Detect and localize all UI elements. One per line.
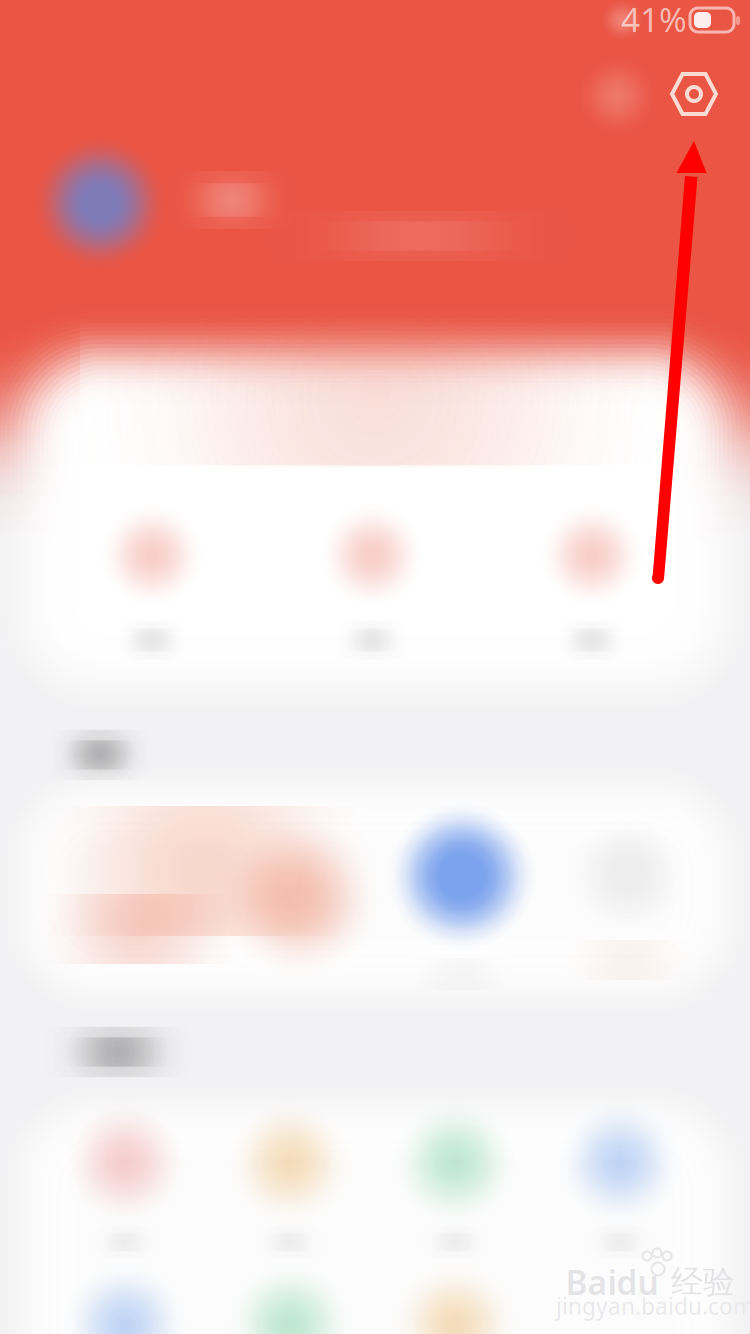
button[interactable] bbox=[25, 793, 385, 993]
staticText: jingyan.baidu.com bbox=[556, 1291, 750, 1321]
button[interactable] bbox=[372, 783, 552, 993]
button[interactable]: Green bbox=[208, 1271, 372, 1334]
button[interactable]: Orange bbox=[373, 1271, 537, 1334]
staticText: 经验 bbox=[671, 1262, 735, 1302]
button[interactable]: Orange bbox=[208, 1108, 372, 1272]
button[interactable] bbox=[262, 492, 482, 672]
staticText: 41% bbox=[621, 0, 687, 41]
button[interactable]: Blue bbox=[538, 1108, 702, 1272]
staticText: Baidu bbox=[565, 1260, 658, 1304]
button[interactable]: Settings bbox=[646, 46, 742, 142]
button[interactable]: Red bbox=[43, 1108, 207, 1272]
button[interactable] bbox=[482, 492, 702, 672]
button[interactable] bbox=[538, 783, 718, 993]
button[interactable]: Blue bbox=[43, 1271, 207, 1334]
button[interactable]: Green bbox=[373, 1108, 537, 1272]
button[interactable] bbox=[42, 492, 262, 672]
